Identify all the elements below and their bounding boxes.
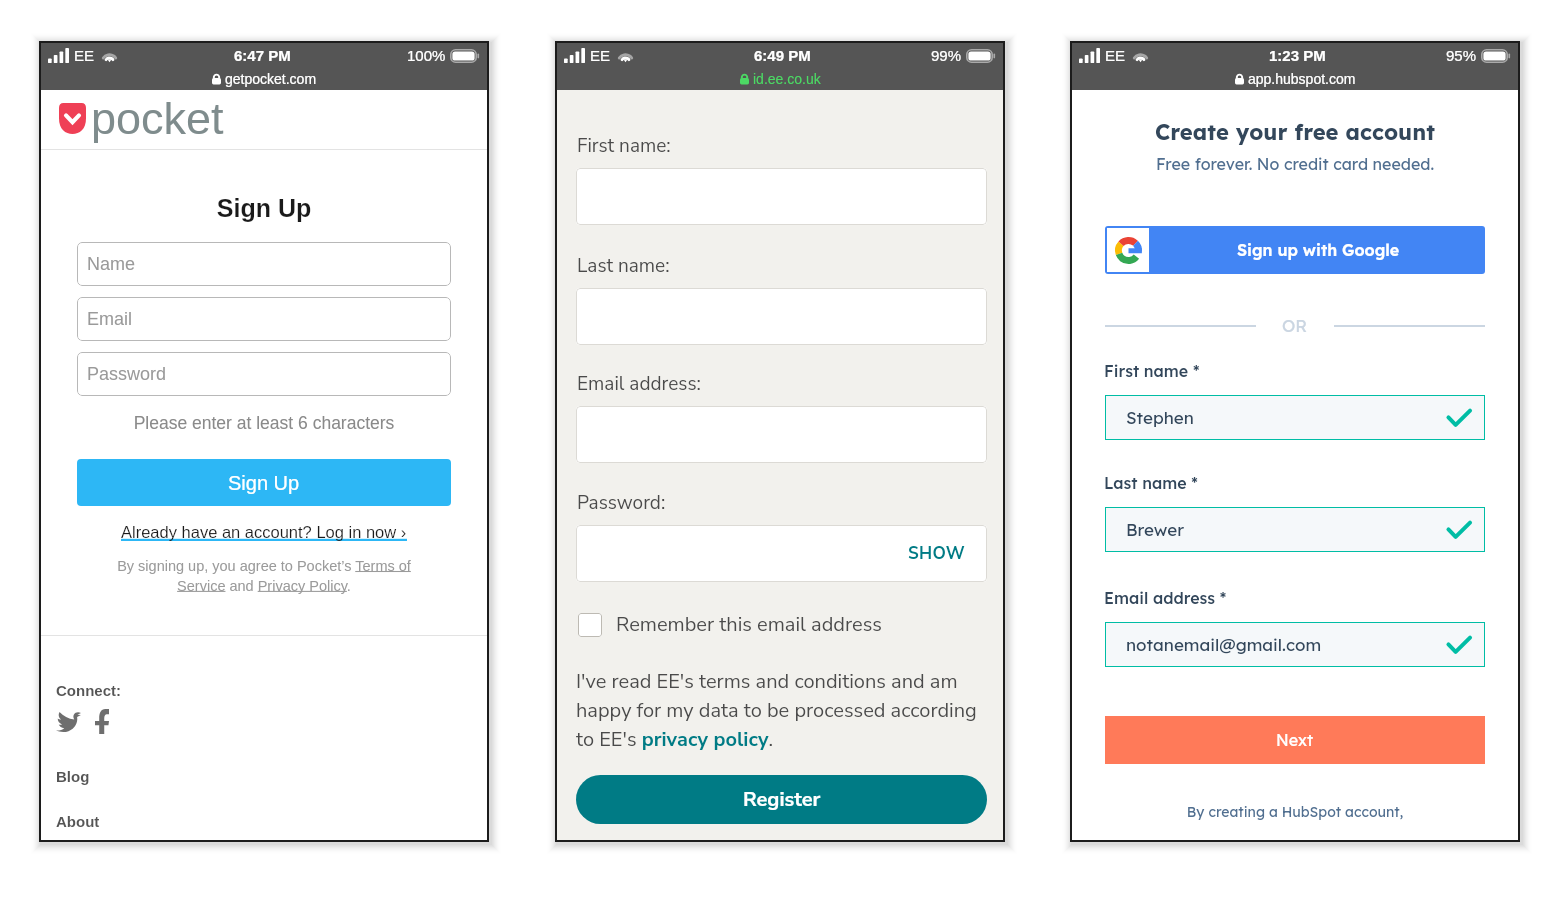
button[interactable]: Email [77, 297, 451, 341]
button[interactable]: notanemail@gmail.com [1105, 622, 1485, 667]
staticText: 6:49 PM [754, 47, 811, 64]
staticText: EE [1105, 47, 1126, 64]
staticText: 1:23 PM [1269, 47, 1326, 64]
staticText: Sign Up [228, 472, 300, 494]
button[interactable]: About [56, 813, 100, 830]
button[interactable]: Sign Up [77, 459, 451, 506]
button[interactable]: Brewer [1105, 507, 1485, 552]
staticText: getpocket.com [225, 71, 317, 87]
staticText: Please enter at least 6 characters [41, 413, 487, 433]
button[interactable]: Next [1105, 716, 1485, 764]
button[interactable]: Twitter [56, 707, 92, 735]
staticText: I've read EE's terms and conditions and … [576, 668, 985, 754]
staticText: Remember this email address [616, 611, 882, 638]
staticText: 95% [1446, 47, 1477, 64]
staticText: Brewer [1126, 519, 1185, 540]
button[interactable]: Stephen [1105, 395, 1485, 440]
staticText: Create your free account [1072, 118, 1518, 146]
staticText: Last name: [577, 253, 670, 279]
button[interactable]: Register [576, 775, 987, 824]
staticText: Name [87, 254, 136, 274]
staticText: First name * [1104, 361, 1200, 381]
staticText: Password [87, 364, 167, 384]
staticText: Free forever. No credit card needed. [1072, 154, 1518, 174]
staticText: Email address: [577, 371, 701, 397]
button[interactable]: SHOW [576, 525, 987, 582]
staticText: Register [743, 786, 821, 813]
staticText: SHOW [908, 542, 966, 565]
staticText: Blog [56, 768, 90, 785]
staticText: By creating a HubSpot account, [1072, 803, 1518, 821]
staticText: Connect: [56, 682, 121, 699]
button[interactable]: Sign up with Google [1105, 226, 1485, 274]
staticText: 100% [407, 47, 446, 64]
button[interactable]: SHOW [898, 532, 987, 575]
staticText: id.ee.co.uk [753, 71, 821, 87]
staticText: app.hubspot.com [1248, 71, 1356, 87]
button[interactable]: Facebook [95, 707, 121, 735]
staticText: Sign up with Google [1237, 240, 1400, 260]
staticText: EE [74, 47, 95, 64]
staticText: Email address * [1104, 588, 1227, 608]
staticText: EE [590, 47, 611, 64]
staticText: 6:47 PM [234, 47, 291, 64]
button[interactable]: Password [77, 352, 451, 396]
staticText: Stephen [1126, 407, 1194, 428]
button[interactable] [576, 406, 987, 463]
staticText: Email [87, 309, 133, 329]
staticText: OR [1282, 315, 1308, 336]
staticText: Password: [577, 490, 666, 516]
staticText: First name: [577, 133, 671, 159]
button[interactable] [576, 168, 987, 225]
staticText: Next [1276, 730, 1314, 750]
staticText: By signing up, you agree to Pocket’s Ter… [69, 558, 459, 594]
staticText: About [56, 813, 100, 830]
staticText: pocket [91, 93, 224, 143]
button[interactable]: Blog [56, 768, 90, 785]
staticText: notanemail@gmail.com [1126, 634, 1322, 655]
button[interactable]: Remember this email address [578, 611, 882, 638]
button[interactable]: Already have an account? Log in now › [121, 523, 407, 541]
staticText: 99% [931, 47, 962, 64]
button[interactable] [576, 288, 987, 345]
staticText: Last name * [1104, 473, 1198, 493]
button[interactable]: Name [77, 242, 451, 286]
staticText: Sign Up [41, 194, 487, 222]
